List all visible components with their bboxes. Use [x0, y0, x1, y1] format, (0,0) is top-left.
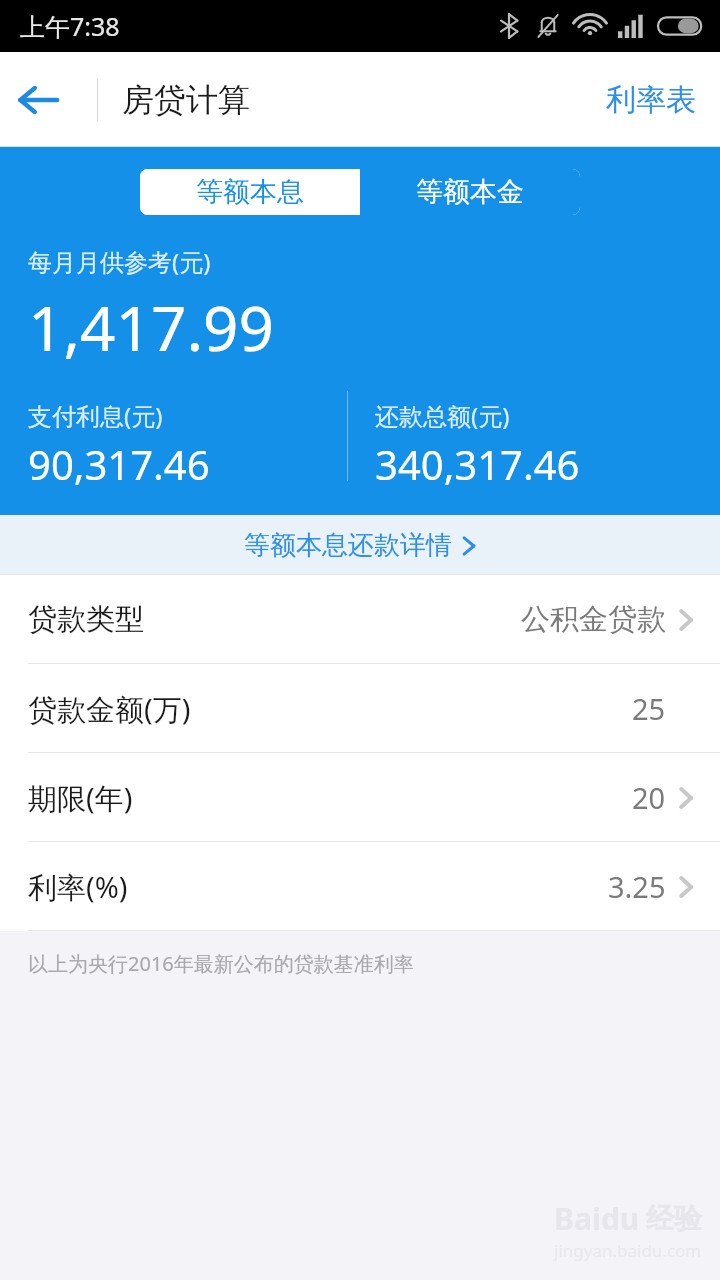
staticText: 利率(%) [28, 867, 128, 907]
staticText: 房贷计算 [122, 80, 250, 120]
staticText: 90,317.46 [28, 437, 210, 491]
staticText: 3.25 [608, 867, 666, 906]
staticText: Baidu [554, 1198, 640, 1239]
staticText: 利率表 [606, 81, 696, 119]
staticText: 上午7:38 [20, 9, 120, 43]
staticText: 贷款类型 [28, 601, 144, 638]
staticText: jingyan.baidu.com [554, 1239, 702, 1262]
button[interactable]: 等额本息还款详情 [0, 515, 720, 575]
button[interactable]: 等额本息 [140, 169, 360, 215]
staticText: 公积金贷款 [521, 601, 666, 638]
staticText: 每月月供参考(元) [28, 245, 211, 278]
staticText: 1,417.99 [28, 285, 275, 369]
staticText: 支付利息(元) [28, 399, 163, 432]
staticText: 等额本息 [196, 175, 304, 209]
button[interactable]: Back [0, 62, 76, 138]
staticText: 25 [632, 689, 666, 728]
staticText: 20 [632, 778, 666, 817]
staticText: 贷款金额(万) [28, 689, 191, 729]
button[interactable]: 贷款金额(万) [0, 664, 720, 753]
staticText: 340,317.46 [375, 437, 580, 491]
staticText: 等额本息还款详情 [244, 529, 452, 562]
button[interactable]: 利率表 [582, 65, 720, 135]
staticText: 经验 [646, 1201, 702, 1236]
staticText: 以上为央行2016年最新公布的贷款基准利率 [28, 950, 414, 977]
staticText: 还款总额(元) [375, 399, 510, 432]
staticText: 期限(年) [28, 778, 133, 818]
button[interactable]: 利率(%) [0, 842, 720, 931]
button[interactable]: 等额本金 [360, 169, 580, 215]
staticText: 等额本金 [416, 175, 524, 209]
button[interactable]: 期限(年) [0, 753, 720, 842]
button[interactable]: 贷款类型 [0, 575, 720, 664]
